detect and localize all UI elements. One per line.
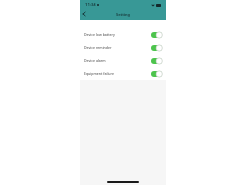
staticText: Device reminder <box>84 45 112 50</box>
staticText: Device low battery <box>84 32 115 37</box>
button[interactable]: Device alarm <box>80 54 166 67</box>
staticText: Device alarm <box>84 58 106 63</box>
button[interactable]: Toggle <box>151 71 162 77</box>
staticText: Equipment failure <box>84 71 114 76</box>
button[interactable]: Device reminder <box>80 41 166 54</box>
button[interactable]: Device low battery <box>80 28 166 41</box>
button[interactable]: Back <box>80 10 88 20</box>
staticText: 11:34 <box>85 2 96 8</box>
button[interactable]: Toggle <box>151 45 162 51</box>
button[interactable]: Toggle <box>151 32 162 38</box>
button[interactable]: Toggle <box>151 58 162 64</box>
staticText: Setting <box>116 12 130 17</box>
button[interactable]: Equipment failure <box>80 67 166 80</box>
